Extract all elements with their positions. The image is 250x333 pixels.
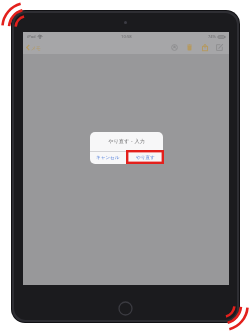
staticText: 10:58 [121, 34, 132, 40]
staticText: メモ [31, 45, 42, 51]
button[interactable]: キャンセル [90, 152, 126, 164]
button[interactable]: Collaborate [169, 42, 180, 53]
staticText: やり直す・入力 [108, 138, 145, 145]
button[interactable]: Delete [184, 42, 195, 53]
button[interactable]: New note [214, 42, 225, 53]
staticText: 74% [208, 34, 216, 39]
staticText: iPad [27, 34, 36, 40]
button[interactable]: メモ [26, 44, 42, 51]
button[interactable]: やり直す [127, 152, 163, 164]
staticText: やり直す [136, 155, 155, 161]
staticText: キャンセル [96, 155, 120, 161]
button[interactable]: Share [199, 42, 210, 53]
